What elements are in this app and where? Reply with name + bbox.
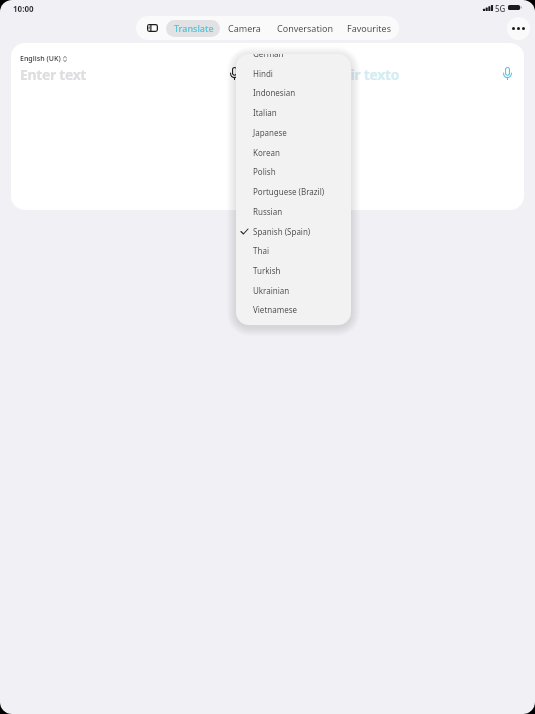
- button[interactable]: Translate: [166, 20, 220, 37]
- button[interactable]: Indonesian: [236, 82, 351, 102]
- button[interactable]: Thai: [236, 240, 351, 260]
- staticText: Ukrainian: [253, 285, 290, 296]
- button[interactable]: Vietnamese: [236, 299, 351, 319]
- button[interactable]: Conversation: [269, 16, 340, 40]
- staticText: Spanish (Spain): [253, 226, 311, 237]
- staticText: Favourites: [347, 22, 391, 34]
- staticText: Enter text: [20, 65, 87, 84]
- button[interactable]: Portuguese (Brazil): [236, 181, 351, 201]
- staticText: Japanese: [253, 127, 287, 138]
- staticText: Russian: [253, 206, 283, 217]
- staticText: Hindi: [253, 68, 273, 79]
- button[interactable]: More options: [507, 17, 530, 40]
- button[interactable]: Ukrainian: [236, 280, 351, 300]
- staticText: Camera: [228, 22, 261, 34]
- button[interactable]: Italian: [236, 102, 351, 122]
- staticText: Indonesian: [253, 87, 296, 98]
- staticText: Korean: [253, 147, 280, 158]
- staticText: English (UK): [20, 54, 61, 64]
- button[interactable]: German: [236, 54, 351, 63]
- button[interactable]: Voice input Spanish: [503, 67, 512, 80]
- button[interactable]: Russian: [236, 201, 351, 221]
- button[interactable]: Hindi: [236, 63, 351, 83]
- button[interactable]: Turkish: [236, 260, 351, 280]
- button[interactable]: Japanese: [236, 122, 351, 142]
- staticText: German: [253, 54, 284, 59]
- button[interactable]: Polish: [236, 161, 351, 181]
- staticText: Translate: [174, 22, 214, 34]
- staticText: 5G: [495, 3, 506, 14]
- button[interactable]: Sidebar: [138, 16, 166, 40]
- staticText: Thai: [253, 245, 269, 256]
- staticText: Portuguese (Brazil): [253, 186, 325, 197]
- staticText: Introducir texto: [293, 65, 400, 84]
- button[interactable]: Favourites: [339, 16, 399, 40]
- staticText: Italian: [253, 107, 277, 118]
- button[interactable]: Spanish (Spain): [236, 221, 351, 241]
- button[interactable]: Voice input English: [230, 67, 239, 80]
- button[interactable]: Camera: [220, 16, 269, 40]
- staticText: Vietnamese: [253, 304, 298, 315]
- button[interactable]: Korean: [236, 142, 351, 162]
- staticText: 10:00: [13, 3, 34, 14]
- staticText: Turkish: [253, 265, 281, 276]
- staticText: Conversation: [277, 22, 333, 34]
- staticText: Polish: [253, 166, 276, 177]
